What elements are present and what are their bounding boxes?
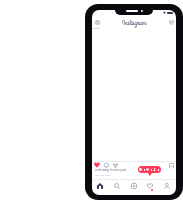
button[interactable]: Add post (128, 180, 139, 191)
button[interactable]: Direct messages (166, 17, 176, 27)
button[interactable]: Profile (161, 180, 172, 191)
button[interactable]: Save (167, 161, 175, 169)
button[interactable]: Activity (144, 180, 155, 191)
button[interactable]: Share (111, 161, 119, 169)
button[interactable]: Search (111, 180, 122, 191)
staticText: milesswig fnance pub (95, 168, 127, 172)
staticText: Ver una mas (95, 173, 110, 176)
button[interactable]: Like (93, 161, 101, 169)
button[interactable]: Camera (92, 17, 102, 27)
button[interactable]: Reactions (138, 166, 161, 173)
button[interactable]: Home (94, 180, 105, 191)
staticText: Instagram (122, 18, 147, 28)
button[interactable]: Comment (102, 161, 110, 169)
